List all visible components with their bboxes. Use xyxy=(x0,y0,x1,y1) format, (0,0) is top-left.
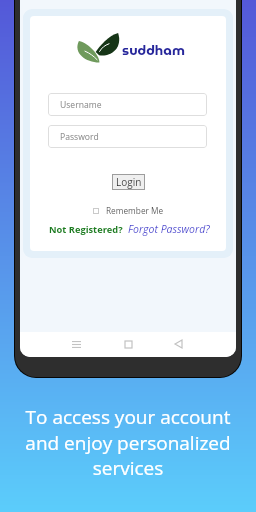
button[interactable]: Password xyxy=(48,125,207,148)
button[interactable]: Username xyxy=(48,93,207,116)
button[interactable]: Login xyxy=(112,174,145,190)
button[interactable]: Remember Me xyxy=(93,205,164,216)
button[interactable]: Home xyxy=(117,333,139,355)
staticText: Username xyxy=(60,99,102,111)
staticText: Login xyxy=(116,175,142,189)
staticText: suddham xyxy=(122,40,185,61)
staticText: Remember Me xyxy=(106,205,164,216)
button[interactable]: Not Registered? xyxy=(49,223,123,236)
staticText: To access your account and enjoy persona… xyxy=(22,404,234,480)
button[interactable]: Back xyxy=(167,333,189,355)
button[interactable]: Recent apps xyxy=(65,333,87,355)
staticText: Password xyxy=(60,131,99,143)
button[interactable]: Forgot Password? xyxy=(128,222,210,236)
